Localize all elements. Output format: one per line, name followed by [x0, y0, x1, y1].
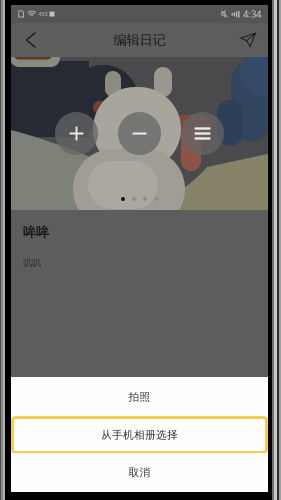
- staticText: 4:34: [243, 8, 261, 20]
- button[interactable]: 从手机相册选择: [11, 417, 268, 453]
- staticText: 从手机相册选择: [101, 428, 178, 441]
- staticText: 取消: [128, 466, 150, 479]
- button[interactable]: 取消: [11, 453, 268, 492]
- staticText: 叽叽: [23, 257, 41, 269]
- button[interactable]: Back: [14, 23, 48, 57]
- button[interactable]: 拍照: [11, 377, 268, 417]
- staticText: 拍照: [128, 390, 150, 403]
- staticText: 哞哞: [23, 224, 49, 240]
- staticText: 453: [38, 10, 47, 18]
- button[interactable]: Reorder photos: [181, 112, 224, 155]
- button[interactable]: Add photo: [55, 112, 98, 155]
- button[interactable]: Send: [231, 23, 265, 57]
- button[interactable]: Delete photo: [118, 112, 161, 155]
- staticText: 编辑日记: [113, 32, 165, 48]
